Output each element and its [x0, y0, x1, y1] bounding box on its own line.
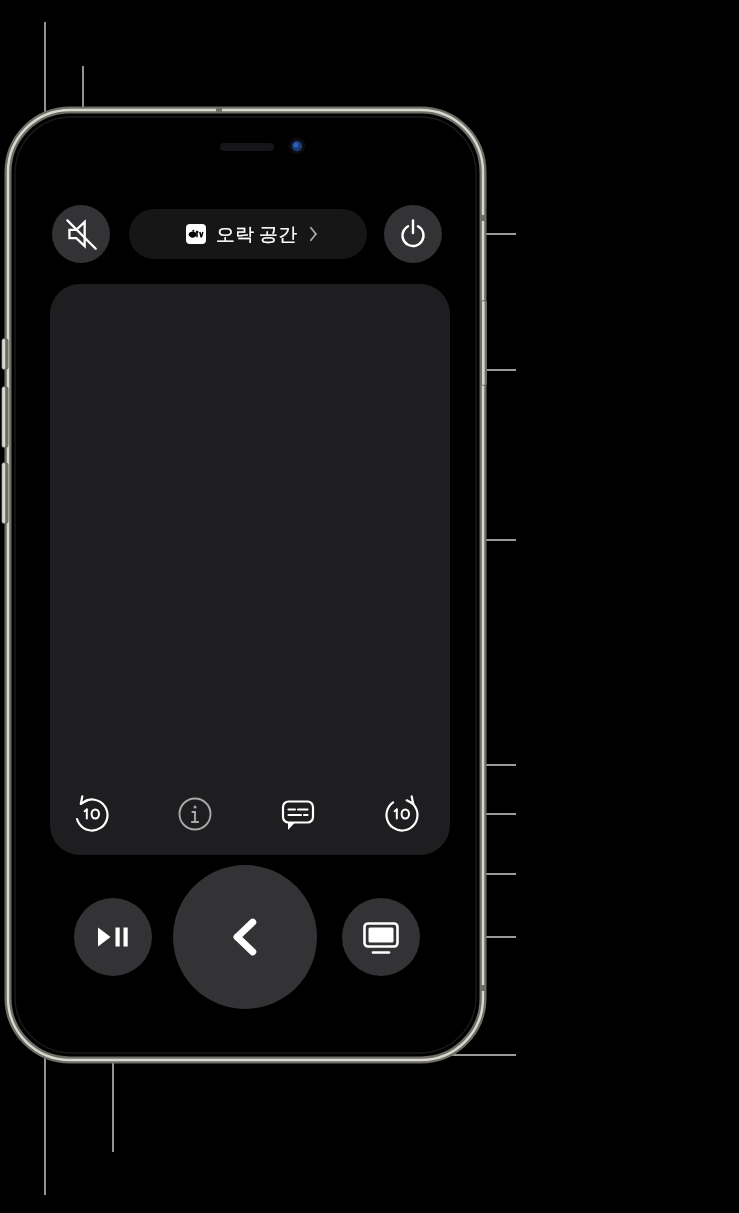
- button[interactable]: 오락 공간: [129, 209, 367, 259]
- button[interactable]: Skip forward 10 seconds: [378, 790, 426, 838]
- button[interactable]: Power: [384, 205, 442, 263]
- button[interactable]: Back: [173, 865, 317, 1009]
- button[interactable]: TV: [342, 898, 420, 976]
- button[interactable]: Info: [171, 790, 219, 838]
- button[interactable]: Play or pause: [74, 898, 152, 976]
- button[interactable]: Subtitles: [274, 790, 322, 838]
- staticText: 오락 공간: [216, 221, 297, 247]
- button[interactable]: Mute: [52, 205, 110, 263]
- button[interactable]: Skip back 10 seconds: [68, 790, 116, 838]
- button[interactable]: Touch surface: [50, 284, 450, 855]
